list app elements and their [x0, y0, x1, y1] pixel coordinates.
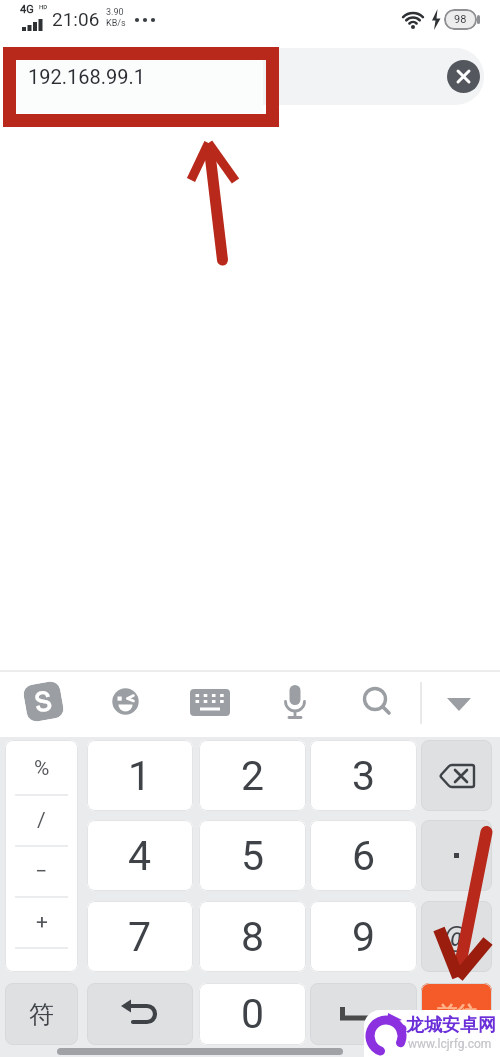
button[interactable]	[284, 685, 306, 723]
staticText: 3.90	[106, 7, 124, 18]
staticText: HD	[39, 3, 48, 10]
button[interactable]	[190, 689, 230, 717]
button[interactable]: 符	[5, 983, 78, 1045]
staticText: 龙城安卓网	[406, 1014, 496, 1037]
button[interactable]: 6	[310, 820, 417, 891]
staticText: KB/s	[106, 18, 126, 29]
staticText: /	[37, 808, 46, 833]
button[interactable]: 2	[199, 740, 306, 811]
staticText: 6	[352, 832, 376, 880]
button[interactable]: 3	[310, 740, 417, 811]
button[interactable]: 9	[310, 901, 417, 972]
staticText: www.lcjrfg.com	[408, 1037, 492, 1051]
staticText: 21:06	[52, 8, 100, 30]
button[interactable]	[5, 740, 78, 972]
button[interactable]	[362, 686, 394, 720]
staticText: 1	[128, 752, 152, 800]
button[interactable]: @	[421, 901, 492, 972]
staticText: %	[34, 756, 50, 781]
button[interactable]	[447, 60, 480, 93]
staticText: −	[35, 859, 48, 884]
staticText: +	[36, 910, 48, 935]
button[interactable]: 8	[199, 901, 306, 972]
button[interactable]: 1	[87, 740, 193, 811]
button[interactable]: 4	[87, 820, 193, 891]
button[interactable]: 前往	[421, 983, 492, 1045]
staticText: S	[32, 685, 55, 719]
staticText: 2	[241, 752, 265, 800]
staticText: 符	[29, 999, 54, 1030]
staticText: 4	[128, 832, 152, 880]
staticText: @	[444, 921, 469, 953]
button[interactable]	[310, 983, 417, 1045]
button[interactable]: 0	[199, 983, 306, 1045]
staticText: 98	[454, 13, 467, 26]
button[interactable]: 7	[87, 901, 193, 972]
button[interactable]: 5	[199, 820, 306, 891]
staticText: 192.168.99.1	[28, 65, 145, 88]
staticText: 前往	[437, 1002, 477, 1027]
staticText: 0	[241, 990, 265, 1038]
button[interactable]	[20, 48, 484, 105]
staticText: 5	[241, 832, 265, 880]
button[interactable]	[87, 983, 193, 1045]
button[interactable]	[112, 688, 140, 716]
staticText: 3	[352, 752, 376, 800]
staticText: 9	[352, 913, 376, 961]
button[interactable]	[421, 820, 492, 891]
staticText: 7	[128, 913, 152, 961]
button[interactable]: S	[22, 680, 65, 723]
staticText: 4G	[20, 3, 34, 16]
staticText: 8	[241, 913, 265, 961]
button[interactable]	[442, 690, 478, 716]
button[interactable]	[421, 740, 492, 811]
